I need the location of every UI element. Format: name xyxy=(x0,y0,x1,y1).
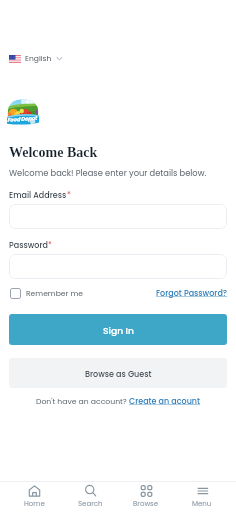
button[interactable] xyxy=(9,254,227,279)
staticText: Don't have an account? xyxy=(36,396,129,407)
staticText: Menu xyxy=(192,499,212,509)
staticText: * xyxy=(48,240,52,251)
staticText: English xyxy=(25,53,52,64)
button[interactable]: Menu xyxy=(174,482,230,512)
button[interactable]: Browse xyxy=(118,482,174,512)
button[interactable]: Browse as Guest xyxy=(9,358,227,388)
button[interactable]: Forgot Password? xyxy=(156,288,228,299)
other: Search xyxy=(84,485,97,497)
staticText: Welcome Back xyxy=(9,145,98,161)
button[interactable]: Remember me xyxy=(10,287,83,300)
button[interactable]: Create an acount xyxy=(129,396,200,407)
staticText: Sign In xyxy=(103,324,134,337)
staticText: Browse xyxy=(133,499,159,509)
staticText: Home xyxy=(24,499,45,509)
staticText: Browse as Guest xyxy=(85,369,152,380)
button[interactable]: Search xyxy=(62,482,118,512)
other: Home xyxy=(28,485,41,497)
staticText: Password xyxy=(9,240,48,251)
button[interactable] xyxy=(9,204,227,229)
staticText: Food Depot xyxy=(7,114,37,124)
staticText: Welcome back! Please enter your details … xyxy=(9,167,207,179)
button[interactable]: Sign In xyxy=(9,314,227,345)
button[interactable]: Home xyxy=(6,482,62,512)
staticText: Email Address xyxy=(9,190,67,201)
staticText: Remember me xyxy=(26,288,83,299)
other: Menu xyxy=(196,485,209,497)
button[interactable]: English xyxy=(6,50,65,67)
other: Browse xyxy=(140,485,153,497)
staticText: Search xyxy=(78,499,103,509)
staticText: * xyxy=(67,190,71,201)
